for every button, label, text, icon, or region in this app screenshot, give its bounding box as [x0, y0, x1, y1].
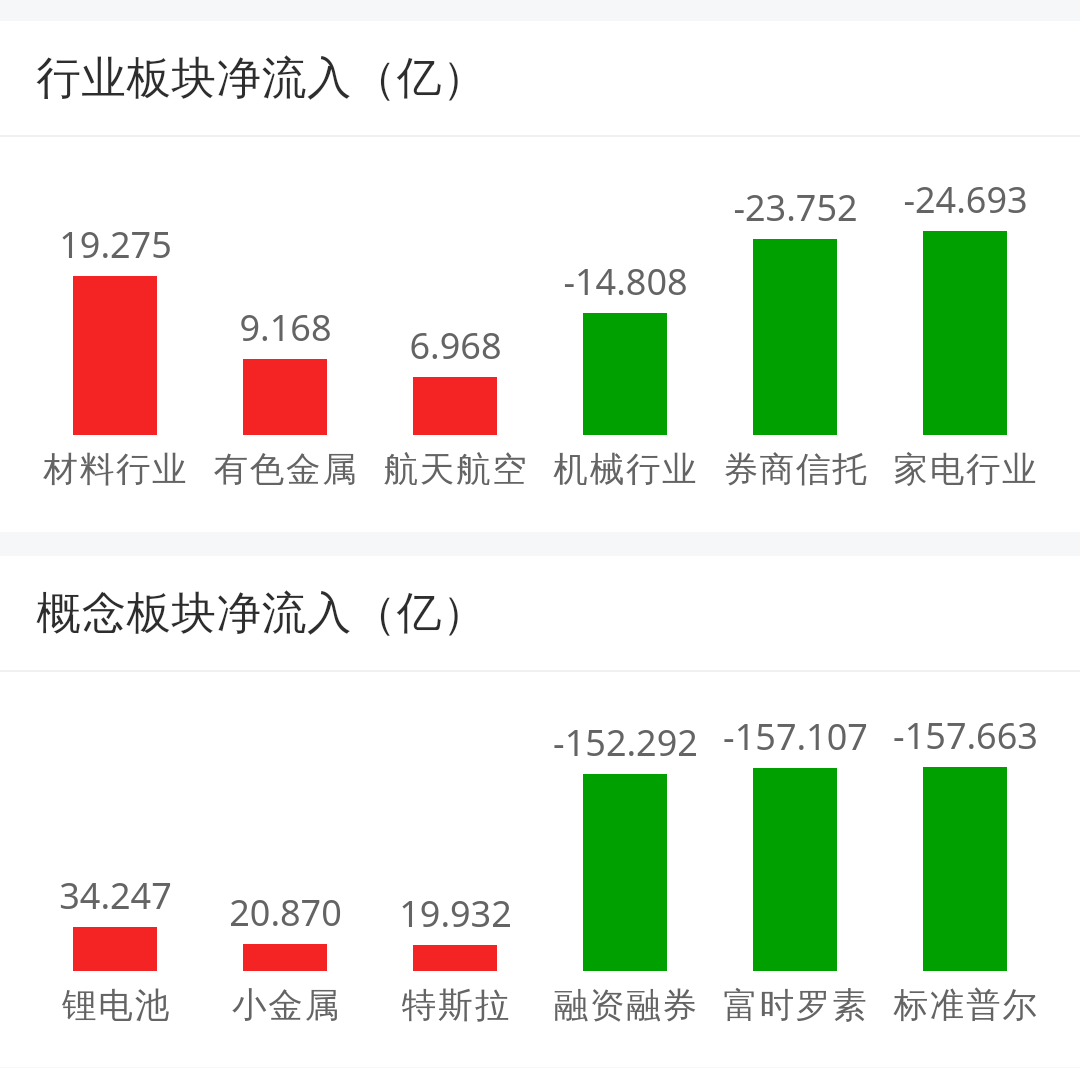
button[interactable]: 9.168	[200, 137, 370, 532]
staticText: -23.752	[733, 183, 858, 232]
staticText: -14.808	[563, 257, 688, 306]
staticText: -24.693	[903, 175, 1028, 224]
staticText: 19.932	[399, 889, 512, 938]
staticText: 有色金属	[213, 448, 359, 491]
staticText: 材料行业	[43, 448, 189, 491]
staticText: -152.292	[553, 718, 698, 767]
button[interactable]: -24.693	[880, 137, 1050, 532]
staticText: 20.870	[229, 888, 342, 937]
staticText: 富时罗素	[723, 984, 869, 1027]
staticText: 航天航空	[383, 448, 529, 491]
staticText: 概念板块净流入（亿）	[36, 585, 487, 641]
staticText: 家电行业	[893, 448, 1039, 491]
button[interactable]: 概念板块净流入（亿）	[0, 556, 1080, 670]
staticText: 行业板块净流入（亿）	[36, 50, 487, 106]
staticText: 特斯拉	[402, 984, 511, 1027]
button[interactable]: 6.968	[370, 137, 540, 532]
button[interactable]: -14.808	[540, 137, 710, 532]
staticText: 机械行业	[553, 448, 699, 491]
staticText: 9.168	[239, 303, 332, 352]
button[interactable]: -152.292	[540, 672, 710, 1067]
staticText: 标准普尔	[893, 984, 1039, 1027]
staticText: 锂电池	[62, 984, 171, 1027]
staticText: 融资融券	[553, 984, 699, 1027]
button[interactable]: 19.932	[370, 672, 540, 1067]
staticText: 19.275	[59, 220, 172, 269]
staticText: 6.968	[409, 321, 502, 370]
button[interactable]: -157.663	[880, 672, 1050, 1067]
button[interactable]: -157.107	[710, 672, 880, 1067]
staticText: 小金属	[232, 984, 341, 1027]
button[interactable]: 19.275	[30, 137, 200, 532]
staticText: -157.663	[893, 711, 1038, 760]
button[interactable]: -23.752	[710, 137, 880, 532]
staticText: 34.247	[59, 871, 172, 920]
button[interactable]: 34.247	[30, 672, 200, 1067]
staticText: -157.107	[723, 712, 868, 761]
button[interactable]: 行业板块净流入（亿）	[0, 21, 1080, 135]
staticText: 券商信托	[723, 448, 869, 491]
button[interactable]: 20.870	[200, 672, 370, 1067]
